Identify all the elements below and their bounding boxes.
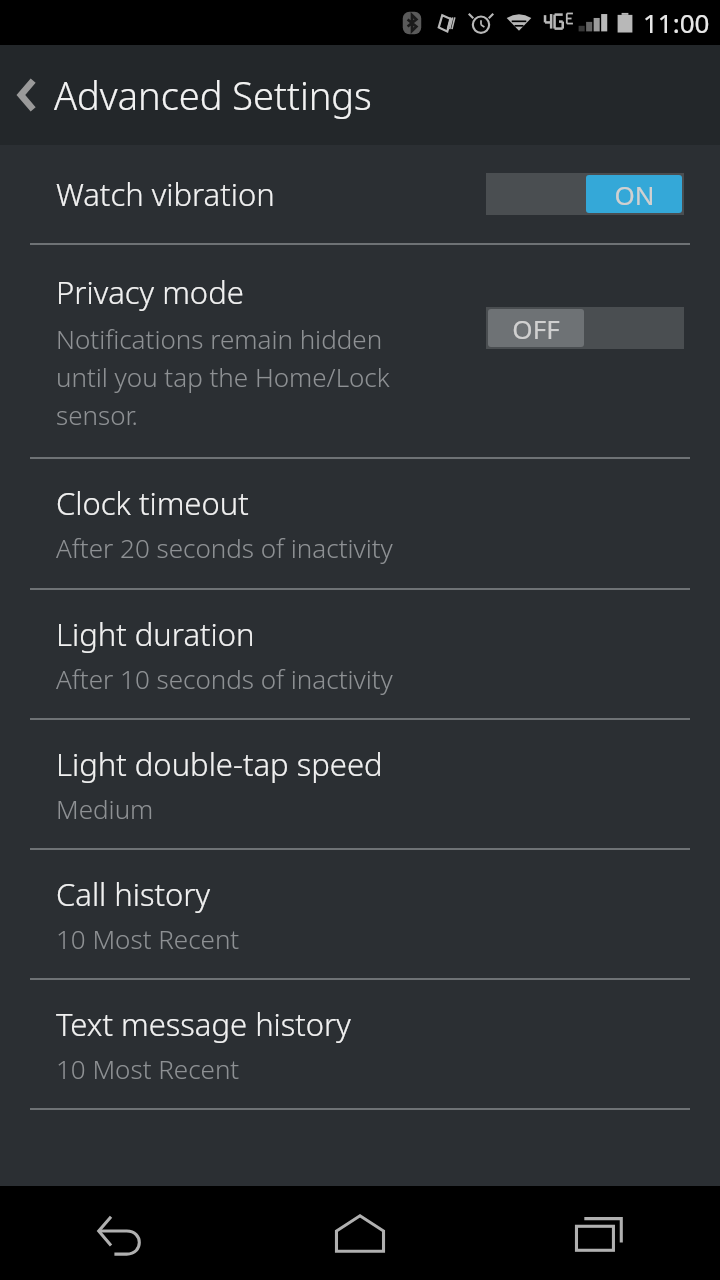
button[interactable]: Call history — [0, 850, 720, 978]
button[interactable]: Back — [0, 45, 720, 145]
staticText: Clock timeout — [56, 482, 249, 524]
staticText: Privacy mode — [56, 271, 244, 313]
button[interactable]: Watch vibration — [0, 145, 720, 243]
staticText: OFF — [512, 311, 560, 346]
staticText: Light double-tap speed — [56, 743, 383, 785]
button[interactable]: Home — [240, 1186, 480, 1280]
staticText: ON — [614, 177, 655, 212]
button[interactable]: Toggle off — [486, 307, 684, 349]
button[interactable]: Privacy mode — [0, 245, 720, 457]
staticText: Medium — [56, 791, 154, 826]
button[interactable]: Light duration — [0, 590, 720, 718]
staticText: 10 Most Recent — [56, 1051, 240, 1086]
staticText: After 20 seconds of inactivity — [56, 530, 393, 565]
button[interactable]: Back — [0, 1186, 240, 1280]
staticText: Text message history — [56, 1003, 351, 1045]
staticText: After 10 seconds of inactivity — [56, 661, 393, 696]
button[interactable]: Clock timeout — [0, 459, 720, 588]
staticText: Call history — [56, 873, 211, 915]
staticText: Watch vibration — [56, 173, 275, 215]
button[interactable]: Text message history — [0, 980, 720, 1108]
staticText: 10 Most Recent — [56, 921, 240, 956]
staticText: Light duration — [56, 613, 255, 655]
button[interactable]: Light double-tap speed — [0, 720, 720, 848]
other: Back — [0, 45, 54, 145]
staticText: Notifications remain hidden until you ta… — [56, 321, 390, 432]
staticText: 11:00 — [643, 5, 710, 40]
staticText: Advanced Settings — [54, 69, 372, 121]
button[interactable]: Toggle on — [486, 173, 684, 215]
button[interactable]: Recent apps — [480, 1186, 720, 1280]
